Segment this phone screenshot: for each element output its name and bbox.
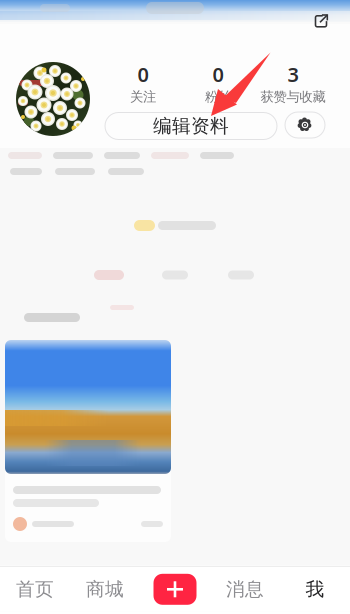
staticText: 3: [287, 61, 298, 88]
button[interactable]: 编辑资料: [105, 112, 277, 139]
button[interactable]: 首页: [0, 567, 70, 612]
button[interactable]: 0: [105, 61, 180, 105]
staticText: 商城: [86, 578, 124, 601]
button[interactable]: 3: [255, 61, 330, 105]
staticText: 首页: [16, 578, 54, 601]
staticText: 0: [212, 61, 223, 88]
staticText: 编辑资料: [153, 114, 229, 137]
button[interactable]: Create post: [140, 567, 210, 612]
button[interactable]: [5, 340, 171, 542]
staticText: 消息: [226, 578, 264, 601]
staticText: 获赞与收藏: [260, 89, 325, 105]
button[interactable]: 0: [180, 61, 255, 105]
staticText: 粉丝: [205, 89, 231, 105]
staticText: 0: [137, 61, 148, 88]
button[interactable]: Settings: [285, 112, 325, 138]
staticText: 我: [305, 578, 324, 601]
staticText: 关注: [130, 89, 156, 105]
button[interactable]: 商城: [70, 567, 140, 612]
button[interactable]: 消息: [210, 567, 280, 612]
button[interactable]: 我: [280, 567, 350, 612]
button[interactable]: Share: [306, 8, 336, 34]
